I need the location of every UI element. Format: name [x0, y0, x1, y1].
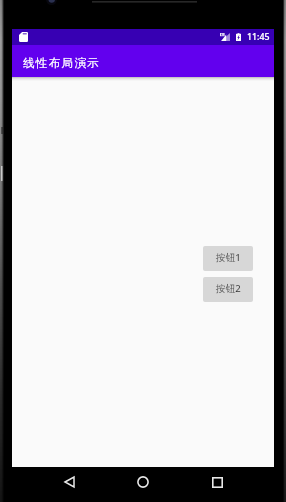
button[interactable]: Home	[130, 469, 156, 495]
button[interactable]: Back	[56, 469, 82, 495]
button[interactable]: 按钮2	[203, 277, 253, 302]
staticText: 按钮2	[216, 282, 241, 295]
staticText: 按钮1	[216, 251, 241, 264]
staticText: 11:45	[247, 31, 270, 43]
button[interactable]: Recents	[204, 469, 230, 495]
button[interactable]: 按钮1	[203, 246, 253, 271]
staticText: 线性布局演示	[23, 56, 101, 71]
